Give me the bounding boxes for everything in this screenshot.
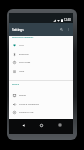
button[interactable]: Data usage [9,58,73,67]
button[interactable]: More options [65,26,72,33]
staticText: Device [12,83,19,86]
staticText: 12:30 [64,18,71,22]
button[interactable]: Bluetooth [9,50,73,59]
staticText: Display [19,94,27,97]
button[interactable]: Back [18,120,28,130]
button[interactable]: Wi-Fi [9,41,73,50]
button[interactable]: Sound & notification [9,100,73,109]
button[interactable]: Storage & USB [9,108,73,117]
staticText: Settings [12,28,24,32]
staticText: Storage & USB [19,111,34,114]
staticText: Bluetooth [19,53,29,56]
staticText: Wi-Fi [19,44,24,47]
button[interactable]: Home [36,120,46,130]
staticText: Sound & notification [19,103,40,106]
button[interactable]: Display [9,91,73,100]
button[interactable]: More [9,67,73,76]
staticText: Data usage [19,61,31,64]
staticText: More [19,70,25,73]
button[interactable]: Recent apps [55,120,65,130]
staticText: Wireless & networks [12,36,34,39]
button[interactable]: Search [58,26,65,33]
